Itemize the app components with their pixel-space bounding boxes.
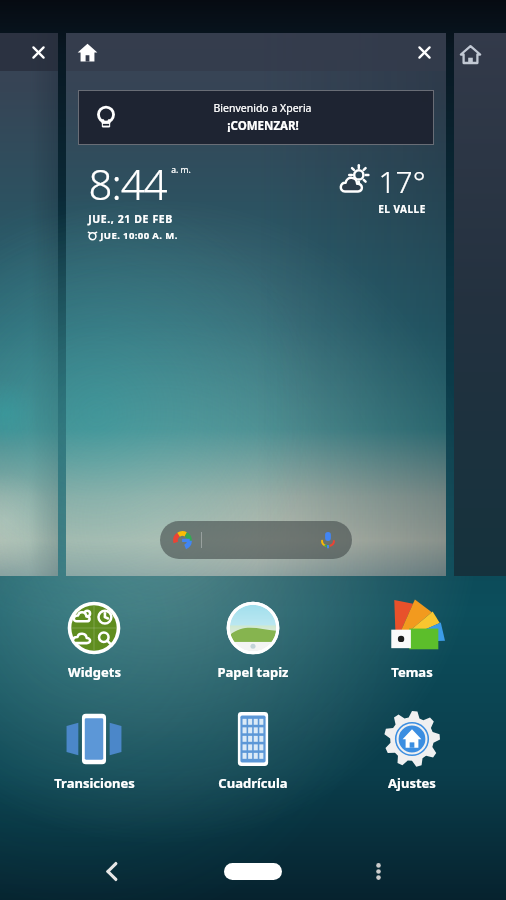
staticText: Ajustes [388,774,436,792]
button[interactable]: Home page [77,42,98,63]
staticText: a. m. [171,164,191,176]
button[interactable]: Add page [454,33,506,576]
button[interactable]: Temas [347,598,477,683]
button[interactable]: Transiciones [29,709,159,794]
staticText: 17° [378,161,426,202]
staticText: Temas [391,663,433,681]
staticText: ¡COMENZAR! [227,118,299,134]
staticText: JUE., 21 DE FEB [88,212,173,226]
staticText: EL VALLE [378,202,426,216]
button[interactable]: Home [224,863,282,880]
button[interactable]: Widgets [29,598,159,683]
staticText: Widgets [68,663,121,681]
staticText: Transiciones [54,774,135,792]
staticText: Cuadrícula [218,774,288,792]
staticText: JUE. 10:00 A. M. [100,229,178,242]
staticText: Papel tapiz [217,663,289,681]
button[interactable]: Bienvenido a Xperia [78,90,434,145]
button[interactable]: Remove page [416,44,433,61]
staticText: 8:44 [88,155,167,212]
button[interactable]: Cuadrícula [188,709,318,794]
button[interactable]: Google search [160,521,352,559]
button[interactable]: Back [90,849,134,893]
button[interactable]: Ajustes [347,709,477,794]
button[interactable]: Papel tapiz [188,598,318,683]
button[interactable]: Previous page [0,33,58,576]
staticText: Bienvenido a Xperia [213,101,312,115]
button[interactable]: More options [356,849,400,893]
